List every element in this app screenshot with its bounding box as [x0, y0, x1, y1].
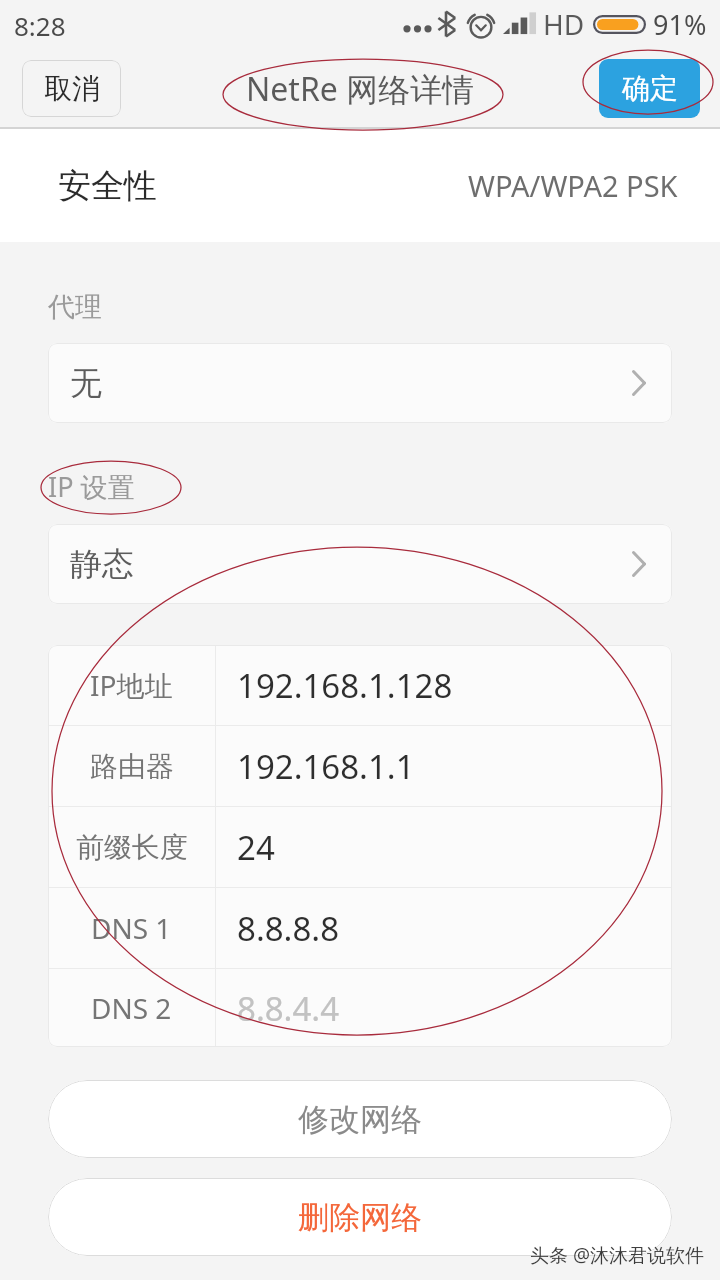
other: Bluetooth: [438, 11, 458, 37]
staticText: 8:28: [14, 8, 66, 43]
staticText: 192.168.1.1: [237, 744, 415, 789]
button[interactable]: 删除网络: [48, 1178, 672, 1256]
staticText: 取消: [44, 71, 100, 106]
staticText: IP 设置: [48, 468, 135, 505]
other: Battery 91%: [593, 15, 646, 34]
other: Signal: [503, 12, 536, 36]
staticText: 91%: [653, 6, 707, 43]
button[interactable]: 路由器: [48, 726, 672, 806]
button[interactable]: IP地址: [48, 645, 672, 725]
button[interactable]: 无: [48, 343, 672, 423]
staticText: 前缀长度: [76, 830, 188, 865]
staticText: DNS 2: [91, 989, 172, 1027]
staticText: 头条 @沐沐君说软件: [530, 1242, 705, 1268]
staticText: 8.8.4.4: [237, 986, 340, 1031]
other: Open: [632, 370, 646, 396]
button[interactable]: 静态: [48, 524, 672, 604]
staticText: 192.168.1.128: [237, 663, 453, 708]
other: Open: [632, 551, 646, 577]
button[interactable]: 安全性: [0, 129, 720, 242]
button[interactable]: 取消: [22, 60, 121, 117]
button[interactable]: DNS 2: [48, 969, 672, 1047]
staticText: 删除网络: [298, 1198, 422, 1237]
staticText: 路由器: [90, 749, 174, 784]
staticText: 代理: [48, 290, 102, 324]
staticText: DNS 1: [91, 909, 172, 947]
staticText: 24: [237, 825, 275, 870]
button[interactable]: DNS 1: [48, 888, 672, 968]
staticText: IP地址: [90, 666, 173, 704]
staticText: HD: [543, 5, 585, 43]
other: Alarm: [467, 11, 495, 38]
button[interactable]: 前缀长度: [48, 807, 672, 887]
other: More: [403, 12, 431, 36]
staticText: 无: [70, 363, 102, 403]
staticText: 安全性: [58, 165, 157, 207]
staticText: 确定: [622, 71, 678, 106]
staticText: WPA/WPA2 PSK: [468, 166, 678, 205]
staticText: NetRe 网络详情: [246, 67, 475, 111]
staticText: 8.8.8.8: [237, 906, 340, 951]
button[interactable]: 修改网络: [48, 1080, 672, 1158]
staticText: 静态: [70, 544, 134, 584]
staticText: 修改网络: [298, 1100, 422, 1139]
button[interactable]: 确定: [599, 59, 700, 118]
